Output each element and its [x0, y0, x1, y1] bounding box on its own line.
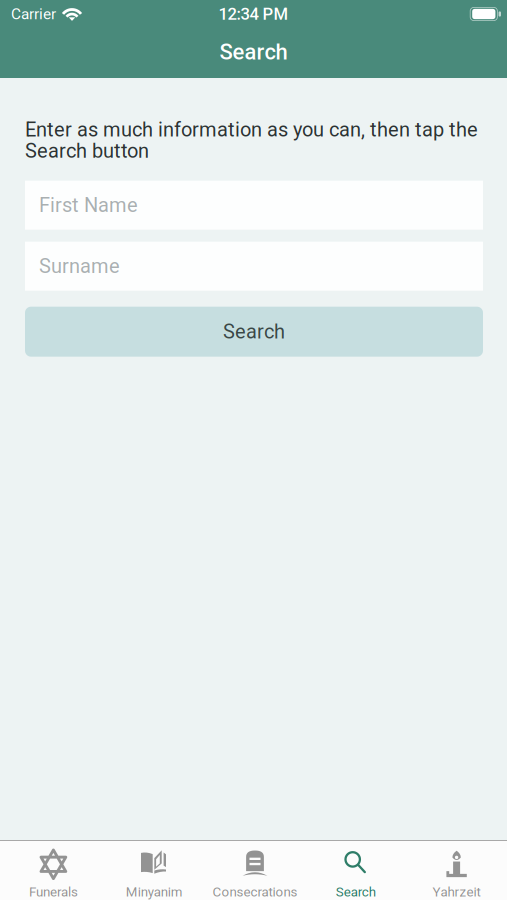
button[interactable]: Search	[305, 840, 406, 899]
button[interactable]: Funerals	[3, 840, 104, 899]
staticText: Search	[223, 320, 285, 343]
staticText: Search	[336, 884, 376, 900]
staticText: Carrier	[11, 5, 56, 23]
staticText: First Name	[39, 193, 138, 217]
staticText: Enter as much information as you can, th…	[25, 118, 478, 163]
staticText: Minyanim	[126, 884, 183, 900]
staticText: 12:34 PM	[218, 4, 288, 24]
button[interactable]: Search	[25, 307, 483, 357]
button[interactable]: First Name	[25, 181, 483, 230]
staticText: Search	[219, 39, 287, 65]
staticText: Funerals	[29, 884, 78, 900]
button[interactable]: Consecrations	[205, 840, 305, 899]
button[interactable]: Minyanim	[104, 840, 205, 899]
button[interactable]: Surname	[25, 242, 483, 291]
staticText: Surname	[39, 254, 120, 278]
staticText: Yahrzeit	[433, 884, 481, 900]
button[interactable]: Yahrzeit	[406, 840, 507, 899]
staticText: Consecrations	[212, 884, 297, 900]
